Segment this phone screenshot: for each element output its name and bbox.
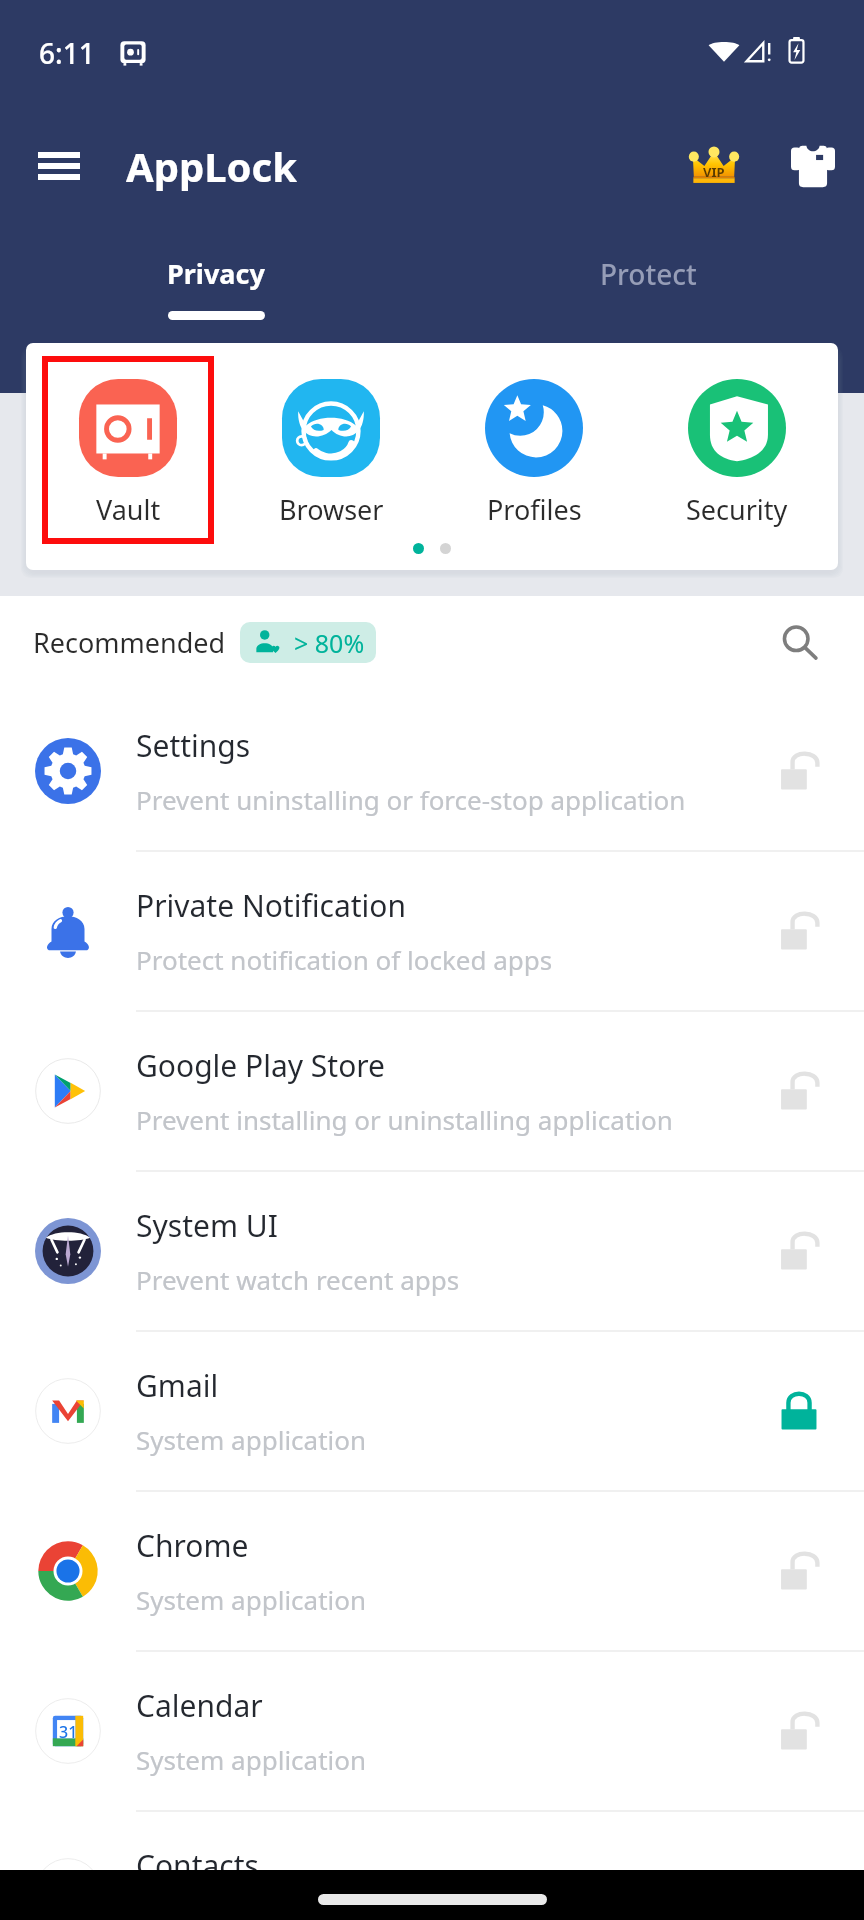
staticText: Vault	[96, 491, 161, 528]
button[interactable]: Browser	[241, 355, 421, 528]
staticText: Recommended	[33, 624, 226, 661]
button[interactable]: Unlock Gmail	[734, 1332, 864, 1490]
staticText: > 80%	[294, 626, 365, 660]
button[interactable]: Security	[647, 355, 827, 528]
button[interactable]: Themes	[773, 126, 853, 206]
staticText: Profiles	[487, 491, 582, 528]
staticText: System application	[136, 1422, 367, 1457]
staticText: Security	[686, 491, 788, 528]
staticText: Google Play Store	[136, 1045, 386, 1086]
staticText: Calendar	[136, 1685, 263, 1726]
staticText: Protect	[600, 255, 697, 293]
button[interactable]: Gmail	[0, 1332, 864, 1490]
staticText: Chrome	[136, 1525, 249, 1566]
button[interactable]: Profiles	[444, 355, 624, 528]
staticText: Protect notification of locked apps	[136, 942, 553, 977]
button[interactable]: Contacts	[0, 1812, 864, 1920]
staticText: Prevent installing or uninstalling appli…	[136, 1102, 673, 1137]
button[interactable]: Settings	[0, 692, 864, 850]
button[interactable]: Lock Contacts	[734, 1812, 864, 1920]
staticText: AppLock	[126, 139, 298, 193]
staticText: Contacts	[136, 1845, 259, 1886]
staticText: System application	[136, 1902, 367, 1920]
button[interactable]: Private Notification	[0, 852, 864, 1010]
staticText: System application	[136, 1742, 367, 1777]
button[interactable]: Lock Chrome	[734, 1492, 864, 1650]
button[interactable]: 31	[0, 1652, 864, 1810]
staticText: System UI	[136, 1205, 278, 1246]
staticText: 6:11	[39, 34, 95, 72]
button[interactable]: Lock Google Play Store	[734, 1012, 864, 1170]
staticText: Prevent uninstalling or force-stop appli…	[136, 782, 686, 817]
button[interactable]: Lock System UI	[734, 1172, 864, 1330]
staticText: Private Notification	[136, 885, 406, 926]
button[interactable]: Open menu	[16, 123, 102, 209]
button[interactable]: Google Play Store	[0, 1012, 864, 1170]
button[interactable]: Search	[760, 603, 840, 683]
button[interactable]: VIP upgrade	[671, 123, 757, 209]
button[interactable]: System UI	[0, 1172, 864, 1330]
button[interactable]: Vault	[38, 355, 218, 528]
button[interactable]: Lock Settings	[734, 692, 864, 850]
staticText: Privacy	[167, 255, 265, 292]
staticText: Prevent watch recent apps	[136, 1262, 460, 1297]
staticText: Gmail	[136, 1365, 219, 1406]
staticText: 31	[59, 1721, 78, 1743]
button[interactable]: Lock Calendar	[734, 1652, 864, 1810]
staticText: System application	[136, 1582, 367, 1617]
button[interactable]: Lock Private Notification	[734, 852, 864, 1010]
staticText: VIP	[703, 163, 725, 181]
button[interactable]: Privacy	[0, 255, 432, 355]
staticText: Browser	[279, 491, 384, 528]
button[interactable]: Chrome	[0, 1492, 864, 1650]
staticText: Settings	[136, 725, 251, 766]
button[interactable]: Protect	[432, 255, 864, 355]
